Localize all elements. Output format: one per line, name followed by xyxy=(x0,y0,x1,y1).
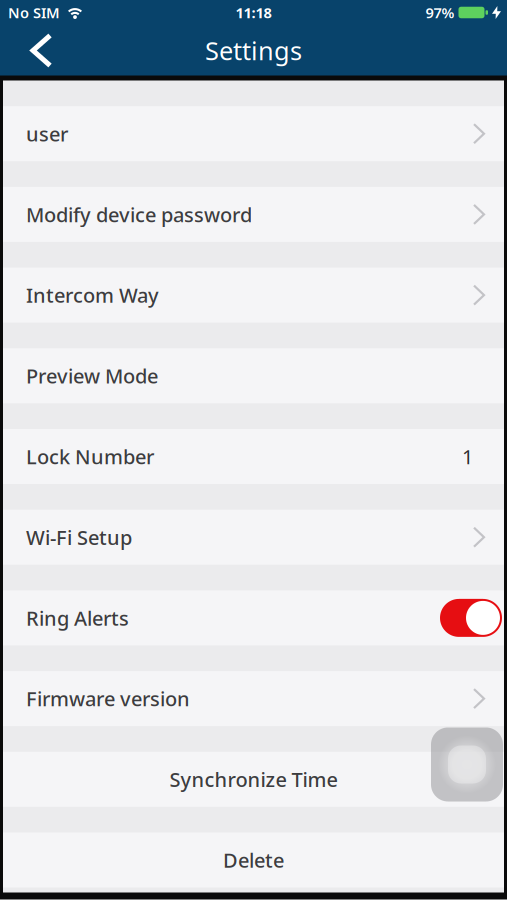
staticText: Wi-Fi Setup xyxy=(26,524,132,550)
staticText: Settings xyxy=(205,34,302,67)
button[interactable]: Firmware version xyxy=(3,671,504,726)
button[interactable]: Synchronize Time xyxy=(3,752,504,807)
button[interactable]: Delete xyxy=(3,832,504,887)
button[interactable]: Back xyxy=(0,26,70,74)
staticText: Firmware version xyxy=(26,685,190,712)
staticText: Lock Number xyxy=(26,443,154,470)
button[interactable]: Lock Number xyxy=(3,429,504,484)
staticText: Intercom Way xyxy=(26,282,159,308)
staticText: Modify device password xyxy=(26,201,252,228)
button[interactable]: Preview Mode xyxy=(3,348,504,403)
staticText: 11:18 xyxy=(235,3,271,22)
staticText: Delete xyxy=(223,847,284,873)
button[interactable]: Modify device password xyxy=(3,187,504,242)
staticText: Synchronize Time xyxy=(169,766,337,793)
button[interactable]: Ring Alerts xyxy=(3,590,504,645)
staticText: 1 xyxy=(462,443,473,470)
staticText: Ring Alerts xyxy=(26,605,129,631)
button[interactable]: Intercom Way xyxy=(3,268,504,323)
staticText: user xyxy=(26,120,68,147)
staticText: No SIM xyxy=(8,3,60,22)
button[interactable]: AssistiveTouch xyxy=(431,727,503,801)
staticText: Preview Mode xyxy=(26,362,158,389)
button[interactable]: Wi-Fi Setup xyxy=(3,510,504,565)
button[interactable]: user xyxy=(3,106,504,161)
staticText: 97% xyxy=(425,3,454,22)
